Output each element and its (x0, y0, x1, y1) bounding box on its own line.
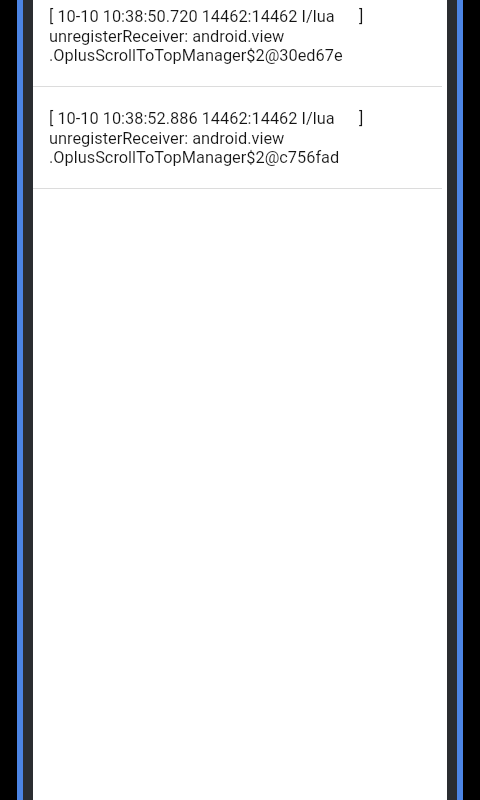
staticText: [ 10-10 10:38:52.886 14462:14462 I/lua ] (49, 109, 364, 129)
staticText: .OplusScrollToTopManager$2@30ed67e (49, 46, 343, 66)
staticText: .OplusScrollToTopManager$2@c756fad (49, 148, 340, 168)
other: Log output (33, 0, 447, 800)
button[interactable]: [ 10-10 10:38:50.720 14462:14462 I/lua ] (33, 0, 447, 87)
staticText: [ 10-10 10:38:50.720 14462:14462 I/lua ] (49, 7, 364, 27)
staticText: unregisterReceiver: android.view (49, 26, 285, 46)
button[interactable]: [ 10-10 10:38:52.886 14462:14462 I/lua ] (33, 87, 447, 189)
staticText: unregisterReceiver: android.view (49, 128, 285, 148)
